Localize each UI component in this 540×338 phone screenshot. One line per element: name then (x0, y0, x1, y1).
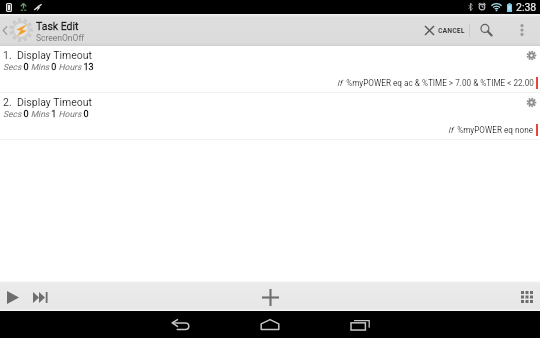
button[interactable]: Action settings (525, 49, 538, 62)
staticText: 1. Display Timeout (3, 49, 92, 61)
other: Navigate up (2, 25, 8, 36)
button[interactable]: Run task (2, 286, 24, 308)
button[interactable]: Navigate up (0, 14, 91, 46)
staticText: Task Edit (36, 20, 79, 32)
button[interactable]: More options (501, 14, 540, 46)
button[interactable]: 1. Display Timeout (0, 46, 540, 92)
button[interactable]: Grid view (517, 287, 537, 307)
button[interactable]: Search (470, 14, 501, 46)
staticText: 2. Display Timeout (3, 96, 92, 108)
button[interactable]: 2. Display Timeout (0, 93, 540, 139)
staticText: 2:38 (516, 1, 537, 13)
staticText: Secs 0 Mins 0 Hours 13 (3, 62, 94, 73)
staticText: If %myPOWER eq none (448, 125, 534, 135)
staticText: CANCEL (438, 26, 465, 35)
button[interactable]: CANCEL (415, 14, 469, 46)
staticText: ScreenOnOff (36, 33, 85, 43)
button[interactable]: Recent apps (335, 311, 385, 338)
button[interactable]: Home (245, 311, 295, 338)
button[interactable]: Action settings (525, 96, 538, 109)
staticText: If %myPOWER eq ac & %TIME > 7.00 & %TIME… (337, 78, 534, 88)
staticText: Secs 0 Mins 1 Hours 0 (3, 109, 89, 120)
button[interactable]: Back (155, 311, 205, 338)
button[interactable]: Add action (257, 284, 283, 310)
button[interactable]: Step task (29, 286, 51, 308)
